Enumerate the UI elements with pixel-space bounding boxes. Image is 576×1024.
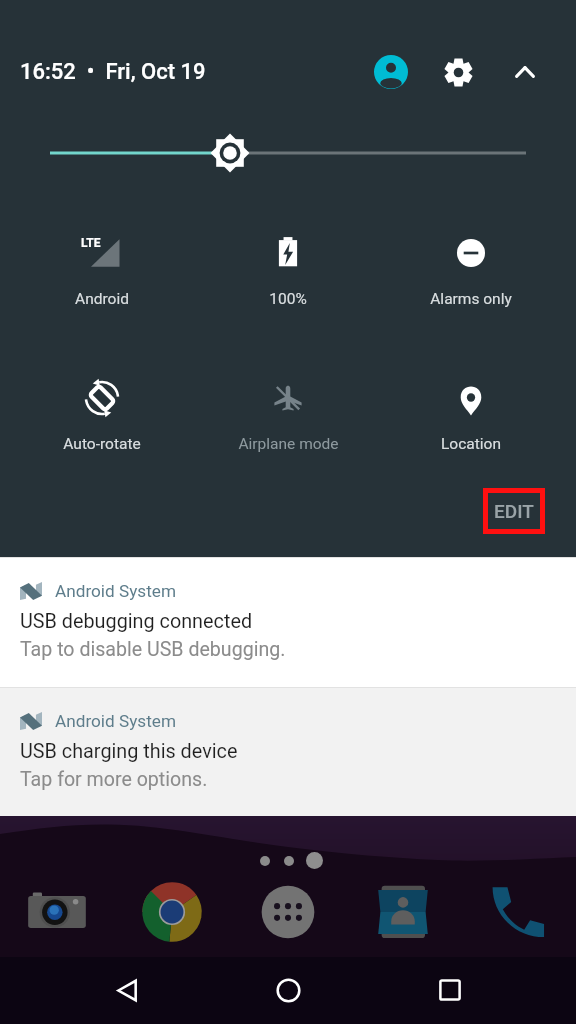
button[interactable]: EDIT [488,493,540,529]
button[interactable]: Contacts [369,878,437,946]
staticText: Auto-rotate [63,435,141,453]
button[interactable]: User [369,50,413,94]
staticText: Android System [55,581,177,601]
button[interactable]: Auto-rotate [27,375,177,453]
staticText: EDIT [494,500,534,522]
staticText: Tap for more options. [20,768,208,791]
button[interactable]: Home [260,957,316,1023]
staticText: Android System [55,711,177,731]
button[interactable]: Camera [23,878,91,946]
staticText: Alarms only [430,290,512,308]
button[interactable]: 100% [213,230,363,308]
staticText: 16:52 • Fri, Oct 19 [20,59,206,85]
button[interactable]: Android System [0,687,576,816]
button[interactable]: Android [27,230,177,308]
button[interactable]: Alarms only [396,230,546,308]
staticText: USB charging this device [20,740,238,763]
button[interactable]: Android System [0,557,576,687]
button[interactable]: 16:52 • Fri, Oct 19 [20,57,206,87]
button[interactable]: Chrome [138,878,206,946]
button[interactable]: Phone [484,878,552,946]
button[interactable]: Location [396,375,546,453]
staticText: 100% [269,290,307,308]
button[interactable]: Collapse [503,50,547,94]
button[interactable]: Settings [436,50,480,94]
staticText: Airplane mode [238,435,339,453]
button[interactable]: Apps [254,878,322,946]
staticText: Tap to disable USB debugging. [20,638,286,661]
button[interactable]: Recents [422,957,478,1023]
staticText: Android [75,290,129,308]
button[interactable]: Airplane mode [213,375,363,453]
staticText: Location [441,435,501,453]
staticText: USB debugging connected [20,610,253,633]
button[interactable]: Back [98,957,154,1023]
button[interactable]: Brightness [0,129,576,177]
staticText: LTE [81,236,101,250]
